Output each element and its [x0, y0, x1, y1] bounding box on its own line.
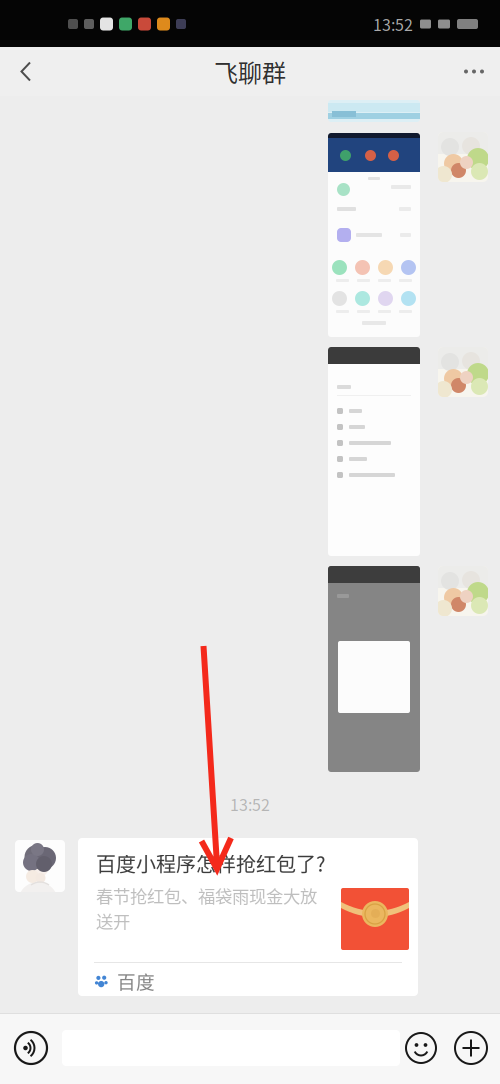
- button[interactable]: Emoji: [400, 1026, 442, 1070]
- staticText: 13:52: [373, 12, 413, 36]
- button[interactable]: Back: [0, 47, 52, 96]
- staticText: 飞聊群: [214, 54, 286, 89]
- staticText: 百度小程序怎样抢红包了?: [96, 848, 325, 877]
- staticText: 百度: [117, 967, 155, 994]
- button[interactable]: Voice message: [9, 1026, 53, 1070]
- button[interactable]: More: [448, 47, 500, 96]
- button[interactable]: 百度小程序怎样抢红包了?: [78, 838, 418, 996]
- button[interactable]: More options: [450, 1026, 492, 1070]
- staticText: 春节抢红包、福袋雨现金大放送开: [96, 883, 317, 933]
- staticText: 13:52: [230, 792, 270, 816]
